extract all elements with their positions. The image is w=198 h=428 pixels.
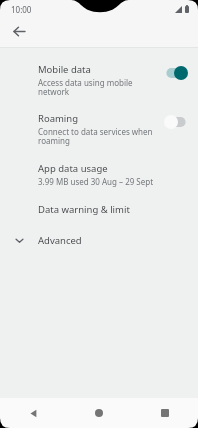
button[interactable]: Mobile data [0,56,198,105]
button[interactable]: Off [164,115,188,129]
button[interactable]: Advanced [0,224,198,257]
staticText: 10:00 [11,4,32,15]
button[interactable]: Back [0,398,66,428]
staticText: 3.99 MB used 30 Aug – 29 Sept [38,176,154,187]
staticText: Advanced [38,234,82,247]
staticText: Connect to data services when roaming [38,126,153,147]
button[interactable]: Data warning & limit [0,195,198,224]
button[interactable]: App data usage [0,154,198,195]
staticText: Mobile data [38,63,91,76]
button[interactable]: Recent apps [132,398,198,428]
button[interactable]: Roaming [0,105,198,154]
button[interactable]: On [164,66,188,80]
button[interactable]: Home [66,398,132,428]
staticText: App data usage [38,162,108,175]
staticText: Roaming [38,112,79,125]
staticText: Data warning & limit [38,203,130,216]
button[interactable]: Back [6,18,32,44]
staticText: Access data using mobile network [38,77,133,98]
